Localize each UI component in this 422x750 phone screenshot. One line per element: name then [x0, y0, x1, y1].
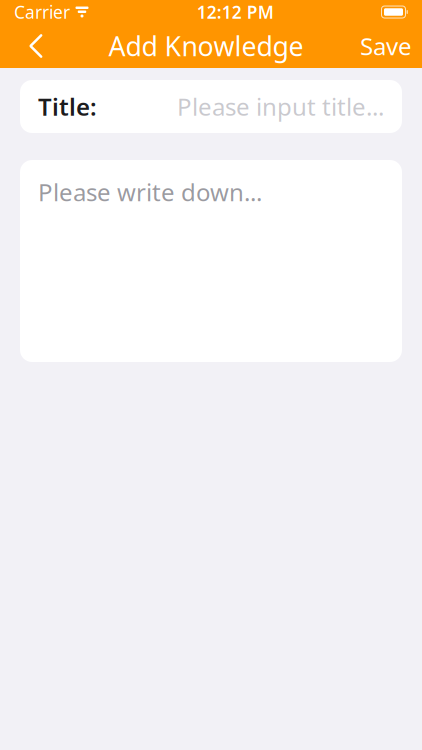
staticText: 12:12 PM — [197, 0, 274, 23]
button[interactable]: Save — [350, 24, 412, 68]
staticText: Title: — [38, 91, 97, 122]
staticText: Add Knowledge — [108, 28, 303, 64]
button[interactable]: Title: — [20, 80, 402, 133]
button[interactable]: Please write down... — [20, 160, 402, 362]
staticText: Please input title... — [177, 91, 384, 122]
staticText: Please write down... — [38, 176, 262, 208]
button[interactable]: Back — [10, 24, 62, 68]
staticText: Save — [360, 30, 412, 62]
staticText: Carrier — [14, 0, 70, 23]
